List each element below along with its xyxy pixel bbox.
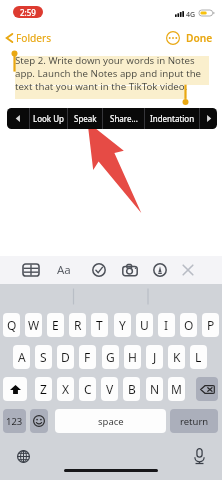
staticText: Q (7, 317, 17, 333)
staticText: 123 (6, 415, 23, 428)
button[interactable]: E (47, 313, 64, 337)
button[interactable]: X (57, 377, 74, 401)
button[interactable]: O (180, 313, 197, 337)
button[interactable]: Emoji (30, 409, 48, 433)
staticText: Y (119, 317, 126, 333)
button[interactable]: Q (3, 313, 20, 337)
button[interactable]: A (13, 345, 30, 369)
button[interactable]: Speak (68, 108, 102, 129)
staticText: B (128, 381, 136, 397)
button[interactable]: Text format (52, 258, 76, 282)
staticText: app. Launch the Notes app and input the (15, 67, 202, 80)
staticText: Aa (57, 262, 71, 278)
staticText: Done (186, 31, 213, 45)
staticText: H (128, 349, 137, 365)
staticText: Share... (110, 113, 138, 124)
button[interactable]: Share... (103, 108, 144, 129)
button[interactable]: F (79, 345, 96, 369)
button[interactable]: Change keyboard (14, 447, 33, 466)
staticText: G (106, 349, 115, 365)
button[interactable]: M (168, 377, 185, 401)
button[interactable]: B (123, 377, 140, 401)
button[interactable]: Camera (118, 258, 142, 282)
staticText: X (62, 381, 70, 397)
staticText: O (184, 317, 194, 333)
staticText: K (173, 349, 181, 365)
staticText: 2:59 (20, 7, 36, 18)
staticText: P (207, 317, 215, 333)
button[interactable]: Y (114, 313, 131, 337)
button[interactable]: Backspace (196, 377, 218, 401)
staticText: I (164, 317, 169, 333)
staticText: J (153, 349, 157, 365)
staticText: L (195, 349, 202, 365)
staticText: V (106, 381, 114, 397)
button[interactable]: Close keyboard (176, 258, 200, 282)
staticText: space (98, 415, 124, 428)
staticText: T (96, 317, 103, 333)
button[interactable]: L (190, 345, 207, 369)
staticText: Z (40, 381, 47, 397)
button[interactable]: D (57, 345, 74, 369)
button[interactable]: Checklist (87, 258, 111, 282)
staticText: return (180, 415, 209, 428)
button[interactable]: More options (163, 28, 182, 47)
button[interactable]: Table (19, 258, 43, 282)
button[interactable]: Folders (2, 28, 60, 48)
button[interactable]: Shift (3, 377, 27, 401)
button[interactable]: C (79, 377, 96, 401)
staticText: E (52, 317, 59, 333)
staticText: N (150, 381, 160, 397)
button[interactable]: R (69, 313, 86, 337)
button[interactable]: Z (35, 377, 52, 401)
button[interactable]: return (170, 409, 218, 433)
staticText: text that you want in the TikTok video. (15, 80, 188, 93)
button[interactable]: Look Up (30, 108, 67, 129)
staticText: 4G (186, 10, 196, 20)
button[interactable]: K (168, 345, 185, 369)
staticText: C (84, 381, 92, 397)
staticText: W (28, 317, 40, 333)
staticText: R (74, 317, 82, 333)
button[interactable]: Dictation (189, 446, 209, 466)
button[interactable]: I (158, 313, 175, 337)
staticText: M (171, 381, 182, 397)
button[interactable]: W (25, 313, 42, 337)
staticText: S (40, 349, 47, 365)
button[interactable]: Next (200, 108, 217, 129)
button[interactable]: U (136, 313, 153, 337)
staticText: A (18, 349, 26, 365)
button[interactable]: V (101, 377, 118, 401)
staticText: Step 2. Write down your words in Notes (15, 54, 195, 67)
button[interactable]: Markup (148, 258, 172, 282)
staticText: F (84, 349, 91, 365)
staticText: U (140, 317, 149, 333)
button[interactable]: H (124, 345, 141, 369)
button[interactable]: G (102, 345, 119, 369)
button[interactable]: N (146, 377, 163, 401)
button[interactable]: space (55, 409, 166, 433)
button[interactable]: J (146, 345, 163, 369)
button[interactable]: P (202, 313, 219, 337)
button[interactable]: Previous (7, 108, 29, 129)
button[interactable]: T (91, 313, 108, 337)
staticText: Look Up (33, 113, 64, 124)
staticText: Indentation (150, 113, 195, 124)
button[interactable]: S (35, 345, 52, 369)
staticText: Speak (74, 113, 97, 124)
staticText: Folders (16, 31, 52, 45)
button[interactable]: Done (183, 28, 216, 48)
button[interactable]: Indentation (145, 108, 199, 129)
button[interactable]: Numbers (3, 409, 26, 433)
staticText: D (61, 349, 70, 365)
